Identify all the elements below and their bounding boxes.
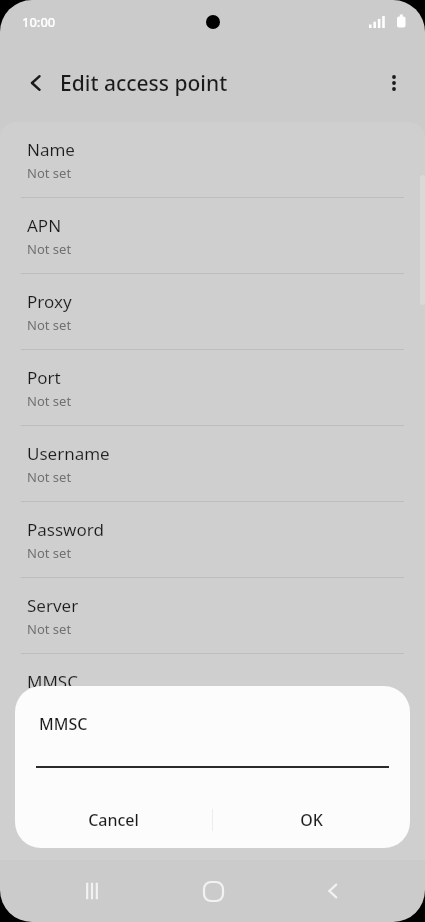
staticText: Edit access point bbox=[60, 69, 228, 98]
staticText: APN bbox=[27, 214, 62, 237]
staticText: Not set bbox=[27, 468, 72, 486]
staticText: MMS proxy bbox=[27, 746, 117, 769]
staticText: Name bbox=[27, 138, 75, 161]
staticText: Proxy bbox=[27, 290, 72, 313]
staticText: Not set bbox=[27, 544, 72, 562]
staticText: 10:00 bbox=[22, 13, 56, 31]
button[interactable]: OK bbox=[213, 792, 410, 848]
button[interactable]: Username bbox=[0, 426, 425, 502]
staticText: Not set bbox=[27, 620, 72, 638]
staticText: Username bbox=[27, 442, 110, 465]
staticText: Server bbox=[27, 594, 79, 617]
button[interactable]: Recents bbox=[64, 863, 120, 919]
button[interactable]: MMSC bbox=[0, 654, 425, 730]
staticText: OK bbox=[300, 809, 323, 831]
staticText: Not set bbox=[27, 164, 72, 182]
staticText: Not set bbox=[27, 316, 72, 334]
staticText: Cancel bbox=[88, 809, 139, 831]
button[interactable]: Cancel bbox=[15, 792, 212, 848]
button[interactable]: Home bbox=[185, 863, 241, 919]
staticText: Port bbox=[27, 366, 61, 389]
staticText: Not set bbox=[27, 392, 72, 410]
button[interactable]: Back bbox=[14, 61, 58, 105]
staticText: Password bbox=[27, 518, 104, 541]
button[interactable]: APN bbox=[0, 198, 425, 274]
staticText: Not set bbox=[27, 240, 72, 258]
button[interactable]: MMS proxy bbox=[0, 730, 425, 806]
button[interactable]: Password bbox=[0, 502, 425, 578]
staticText: MMSC bbox=[27, 670, 78, 693]
button[interactable]: Name bbox=[0, 122, 425, 198]
button[interactable]: Back bbox=[305, 863, 361, 919]
staticText: MMSC bbox=[39, 713, 88, 735]
button[interactable]: Port bbox=[0, 350, 425, 426]
button[interactable]: Proxy bbox=[0, 274, 425, 350]
button[interactable]: Server bbox=[0, 578, 425, 654]
button[interactable]: More options bbox=[371, 60, 417, 106]
